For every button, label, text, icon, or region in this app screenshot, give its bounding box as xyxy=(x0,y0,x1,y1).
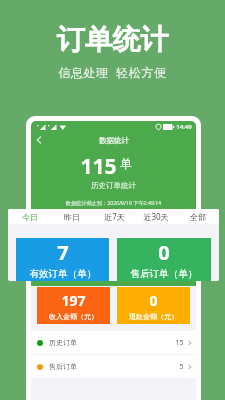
staticText: 历史订单 xyxy=(49,338,77,347)
button[interactable]: 售后订单 xyxy=(31,355,196,378)
button[interactable]: 今日 xyxy=(8,209,51,224)
staticText: 退款金额（元） xyxy=(129,312,178,321)
staticText: 5 xyxy=(179,362,184,372)
staticText: 数据统计 xyxy=(99,136,129,145)
staticText: 0 xyxy=(158,239,170,266)
staticText: 历史订单统计 xyxy=(31,181,196,190)
staticText: 115 xyxy=(80,152,117,181)
staticText: 售后订单 xyxy=(49,362,77,371)
button[interactable]: 昨日 xyxy=(51,209,93,224)
staticText: 近7天 xyxy=(104,211,125,222)
staticText: 收入金额（元） xyxy=(49,312,98,321)
staticText: 14:49 xyxy=(176,123,192,131)
button[interactable]: 近30天 xyxy=(135,209,177,224)
button[interactable]: 历史订单 xyxy=(31,331,196,354)
staticText: 7 xyxy=(57,239,69,266)
staticText: 数据统计截止到：2020/9/19 下午2:49:14 xyxy=(31,199,196,206)
staticText: 单 xyxy=(120,156,132,171)
staticText: 售后订单（单） xyxy=(130,268,198,280)
staticText: 有效订单（单） xyxy=(29,268,97,280)
button[interactable]: 197 xyxy=(37,287,110,324)
staticText: 15 xyxy=(175,338,184,348)
staticText: 197 xyxy=(61,291,86,310)
button[interactable]: 0 xyxy=(117,238,211,281)
staticText: 近30天 xyxy=(143,211,169,222)
staticText: 今日 xyxy=(22,212,38,222)
staticText: 全部 xyxy=(190,212,206,222)
button[interactable]: 近7天 xyxy=(93,209,135,224)
button[interactable]: 7 xyxy=(16,238,109,281)
button[interactable]: 0 xyxy=(117,287,190,324)
staticText: 信息处理 轻松方便 xyxy=(0,64,225,80)
button[interactable]: 全部 xyxy=(177,209,219,224)
staticText: 订单统计 xyxy=(0,22,225,57)
button[interactable]: Back xyxy=(35,136,43,144)
staticText: 昨日 xyxy=(64,212,80,222)
staticText: 0 xyxy=(149,291,158,310)
